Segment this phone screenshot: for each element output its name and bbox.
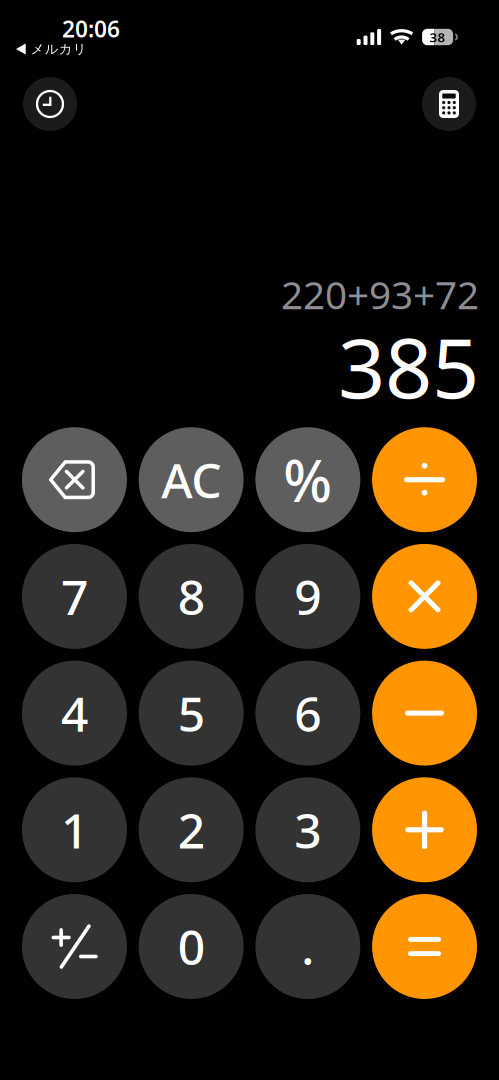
staticText: 4 bbox=[61, 681, 88, 745]
staticText: 0 bbox=[178, 915, 205, 978]
button[interactable]: Subtract bbox=[372, 661, 477, 766]
staticText: 2 bbox=[178, 798, 205, 862]
button[interactable]: Multiply bbox=[372, 544, 477, 649]
button[interactable]: Equals bbox=[372, 894, 477, 999]
button[interactable]: 2 bbox=[139, 777, 244, 882]
staticText: 8 bbox=[178, 564, 205, 628]
staticText: 38 bbox=[430, 28, 446, 46]
staticText: 5 bbox=[178, 681, 205, 745]
button[interactable]: AC bbox=[139, 427, 244, 532]
button[interactable]: Divide bbox=[372, 427, 477, 532]
staticText: 385 bbox=[338, 311, 479, 421]
button[interactable]: 3 bbox=[255, 777, 360, 882]
staticText: メルカリ bbox=[31, 41, 87, 57]
staticText: % bbox=[283, 442, 332, 518]
staticText: 3 bbox=[294, 798, 321, 862]
button[interactable]: Delete bbox=[22, 427, 127, 532]
staticText: 6 bbox=[294, 681, 321, 745]
button[interactable]: 8 bbox=[139, 544, 244, 649]
button[interactable]: . bbox=[255, 894, 360, 999]
staticText: . bbox=[301, 915, 314, 978]
button[interactable]: 0 bbox=[139, 894, 244, 999]
button[interactable]: 1 bbox=[22, 777, 127, 882]
button[interactable]: 5 bbox=[139, 661, 244, 766]
button[interactable]: % bbox=[255, 427, 360, 532]
staticText: 20:06 bbox=[62, 14, 120, 44]
button[interactable]: History bbox=[23, 77, 77, 131]
button[interactable]: Plus minus bbox=[22, 894, 127, 999]
button[interactable]: 9 bbox=[255, 544, 360, 649]
staticText: AC bbox=[161, 448, 221, 511]
staticText: 7 bbox=[61, 564, 88, 628]
button[interactable]: Add bbox=[372, 777, 477, 882]
button[interactable]: 4 bbox=[22, 661, 127, 766]
staticText: 220+93+72 bbox=[281, 268, 479, 320]
button[interactable]: 7 bbox=[22, 544, 127, 649]
button[interactable]: 6 bbox=[255, 661, 360, 766]
staticText: 9 bbox=[294, 564, 321, 628]
button[interactable]: Calculator bbox=[422, 77, 476, 131]
staticText: 1 bbox=[61, 798, 88, 862]
